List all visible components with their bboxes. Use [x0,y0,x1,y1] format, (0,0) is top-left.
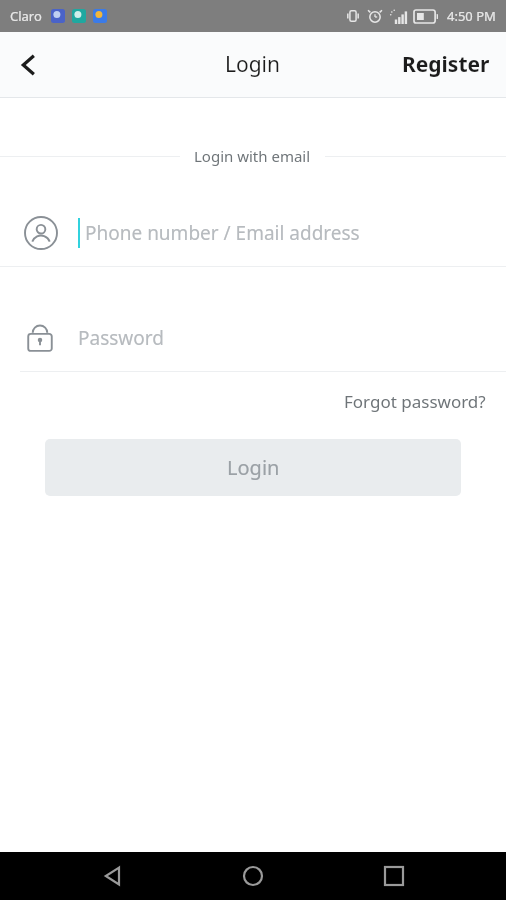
staticText: Login [227,454,280,481]
staticText: Password [78,325,164,351]
staticText: Forgot password? [344,390,486,413]
staticText: Claro [10,7,42,25]
button[interactable]: Back [0,36,58,94]
staticText: Login with email [194,146,311,166]
button[interactable]: Register [386,32,506,97]
staticText: 4:50 PM [447,7,496,25]
button[interactable]: Home [225,852,281,900]
staticText: Login [225,50,281,79]
staticText: Register [402,50,490,79]
staticText: Phone number / Email address [85,220,360,246]
button[interactable]: Back [85,852,141,900]
button[interactable]: Recent apps [366,852,422,900]
button[interactable]: Phone number / Email address [0,200,506,266]
button[interactable]: Login [45,439,461,496]
button[interactable]: Password [0,305,506,371]
button[interactable]: Forgot password? [324,384,506,419]
